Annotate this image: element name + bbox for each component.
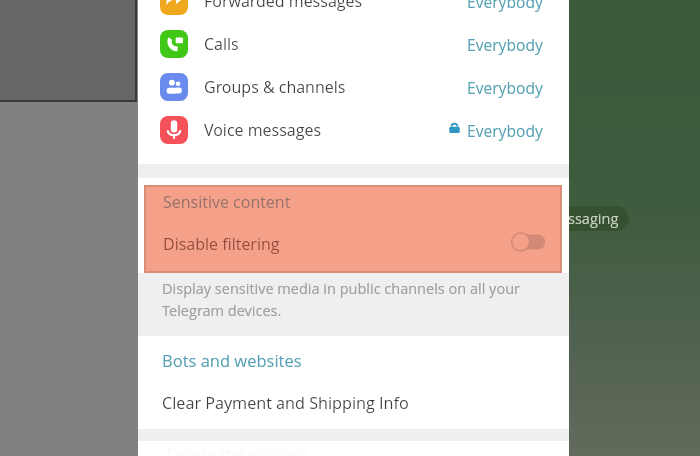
button[interactable]: Calls xyxy=(138,22,569,66)
staticText: Clear Payment and Shipping Info xyxy=(162,392,409,414)
other: Premium locked xyxy=(448,121,461,134)
button[interactable]: Forwarded messages xyxy=(138,0,569,23)
staticText: Bots and websites xyxy=(162,349,302,371)
staticText: Everybody xyxy=(467,34,543,55)
staticText: Groups & channels xyxy=(204,76,346,98)
button[interactable]: ssaging xyxy=(550,206,629,231)
staticText: Calls xyxy=(204,33,239,55)
button[interactable]: Clear Payment and Shipping Info xyxy=(138,384,569,428)
staticText: Sensitive content xyxy=(163,191,291,213)
staticText: Disable filtering xyxy=(163,233,280,255)
staticText: Everybody xyxy=(467,77,543,98)
staticText: ssaging xyxy=(568,209,619,229)
button[interactable]: Bots and websites xyxy=(138,340,569,384)
staticText: Forwarded messages xyxy=(204,0,363,12)
button[interactable]: Sensitive content xyxy=(146,187,560,271)
staticText: Everybody xyxy=(467,120,543,141)
button[interactable]: Groups & channels xyxy=(138,65,569,109)
staticText: Voice messages xyxy=(204,119,322,141)
staticText: Display sensitive media in public channe… xyxy=(162,279,520,321)
button[interactable]: Disable filtering toggle xyxy=(511,231,548,253)
staticText: Everybody xyxy=(467,0,543,12)
button[interactable]: Voice messages xyxy=(138,108,569,152)
